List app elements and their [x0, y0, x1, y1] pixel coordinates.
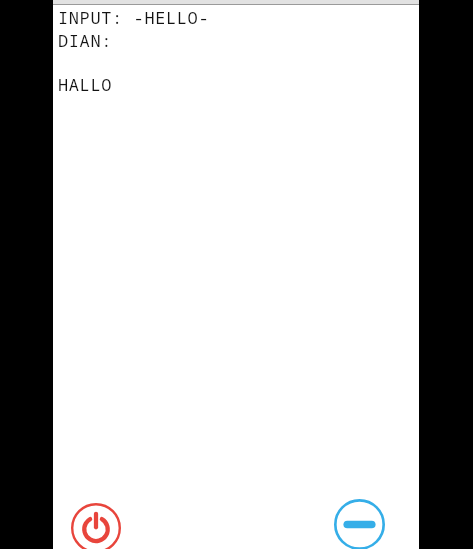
staticText: HALLO [58, 73, 112, 96]
button[interactable]: Remove [334, 499, 385, 549]
button[interactable]: Power off [71, 503, 121, 549]
staticText: DIAN: [58, 29, 112, 52]
staticText: INPUT: -HELLO- [58, 6, 210, 29]
